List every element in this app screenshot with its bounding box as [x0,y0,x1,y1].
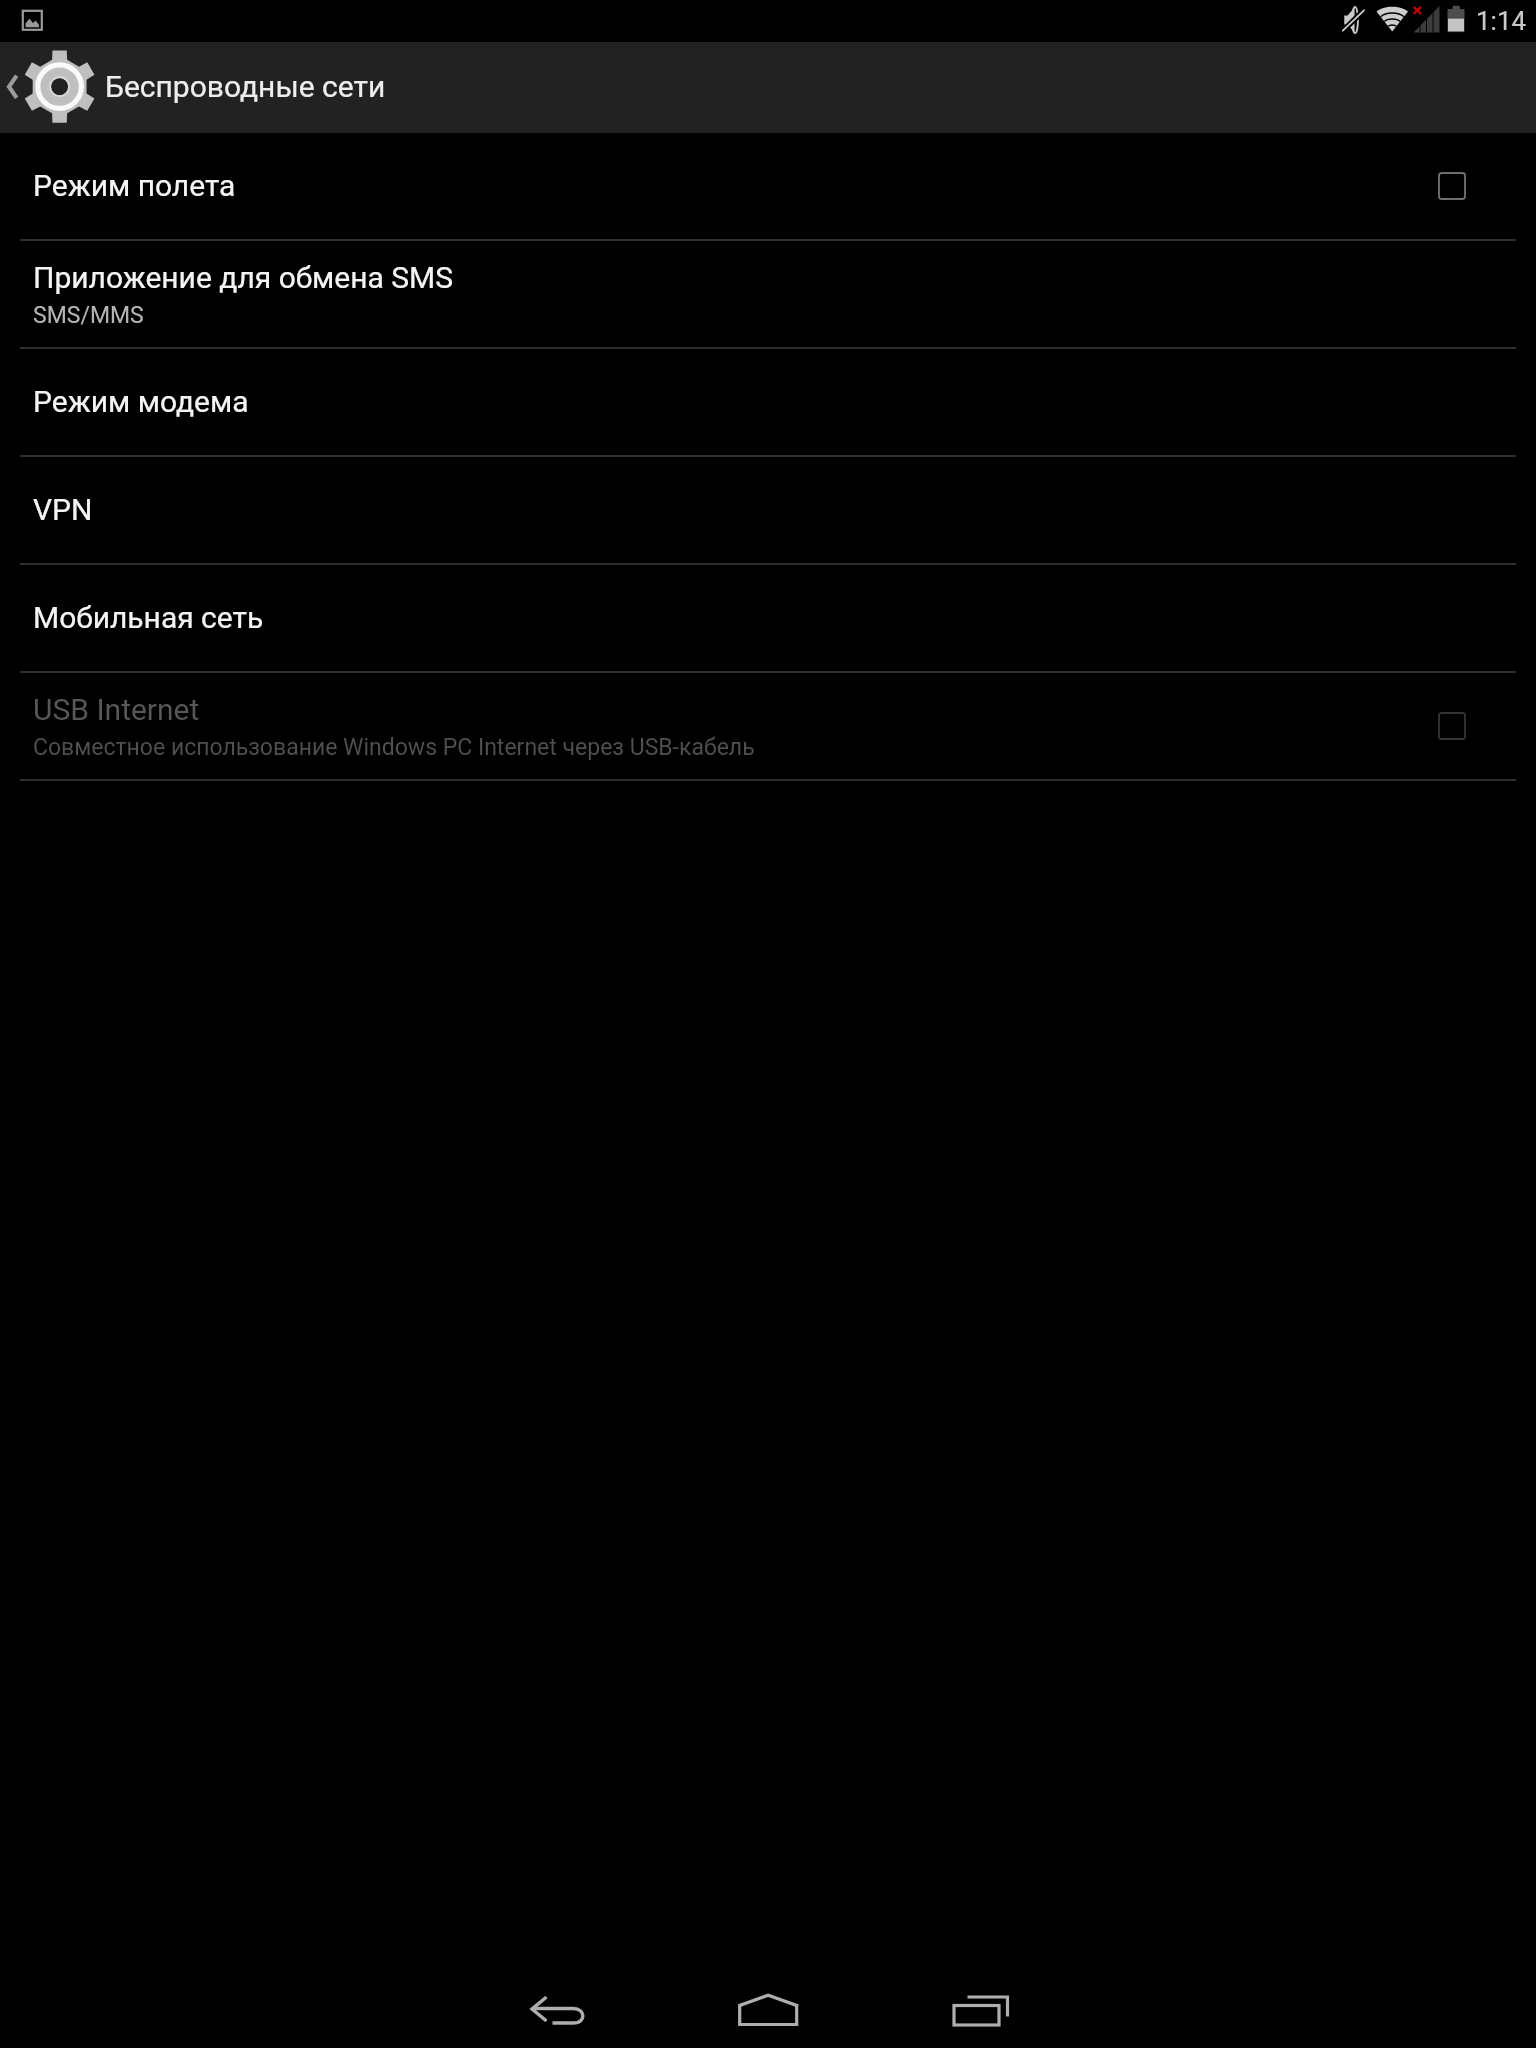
staticText: Режим модема [33,384,249,419]
staticText: Совместное использование Windows PC Inte… [33,734,755,761]
staticText: Беспроводные сети [105,69,386,104]
button[interactable]: Режим полета [0,133,1536,239]
button[interactable]: Режим модема [0,349,1536,455]
button[interactable]: Мобильная сеть [0,565,1536,671]
button[interactable]: Recent apps [880,1952,1095,2048]
staticText: Приложение для обмена SMS [33,260,454,295]
other: Navigate up to Settings [0,42,420,133]
staticText: USB Internet [33,692,200,727]
button[interactable]: USB Internet [0,673,1536,779]
button[interactable]: Navigate up to Settings [0,42,420,133]
button[interactable]: VPN [0,457,1536,563]
staticText: Режим полета [33,168,236,203]
button[interactable]: Home [665,1952,880,2048]
staticText: VPN [33,492,93,527]
staticText: Мобильная сеть [33,600,264,635]
staticText: 1:14 [1476,6,1527,36]
button[interactable]: Back [450,1952,665,2048]
staticText: SMS/MMS [33,302,144,329]
button[interactable]: Приложение для обмена SMS [0,241,1536,347]
